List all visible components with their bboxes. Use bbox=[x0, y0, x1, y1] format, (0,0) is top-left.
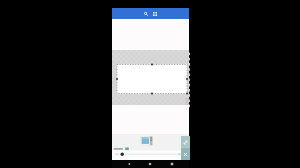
button[interactable]: Preview image bbox=[140, 135, 153, 147]
button[interactable]: Back bbox=[125, 160, 133, 168]
button[interactable]: Home bbox=[146, 160, 154, 168]
button[interactable]: Recents bbox=[168, 160, 176, 168]
button[interactable]: Apps bbox=[151, 10, 159, 18]
button[interactable]: Search bbox=[142, 10, 150, 18]
button[interactable]: Expand bbox=[181, 136, 190, 148]
button[interactable]: Close bbox=[181, 148, 190, 160]
